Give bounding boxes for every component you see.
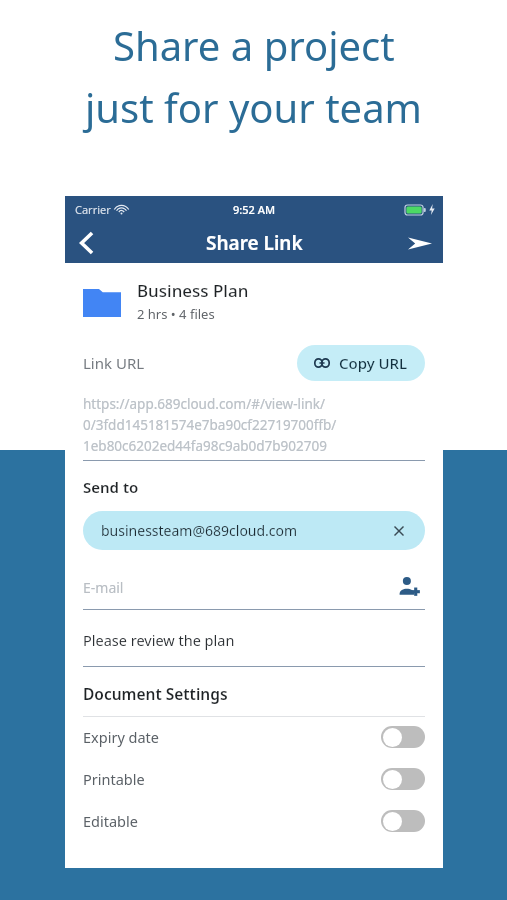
button[interactable]: Copy URL — [297, 345, 425, 381]
staticText: 9:52 AM — [233, 202, 276, 217]
staticText: Carrier — [75, 202, 111, 217]
button[interactable]: Send — [397, 223, 443, 263]
staticText: Business Plan — [137, 279, 249, 302]
button[interactable]: Editable — [83, 801, 425, 841]
button[interactable]: Add contact — [395, 572, 425, 602]
button[interactable]: Remove recipient — [391, 523, 407, 539]
button[interactable]: Printable — [83, 759, 425, 799]
staticText: Editable — [83, 811, 138, 831]
staticText: Share Link — [206, 230, 303, 256]
button[interactable]: Expiry date — [83, 717, 425, 757]
staticText: Send to — [83, 477, 139, 497]
staticText: Printable — [83, 769, 145, 789]
staticText: 1eb80c6202ed44fa98c9ab0d7b902709 — [83, 437, 327, 455]
button[interactable]: Back — [65, 223, 109, 263]
staticText: Document Settings — [83, 683, 228, 704]
staticText: E-mail — [83, 578, 124, 597]
button[interactable]: Business Plan — [83, 279, 425, 323]
button[interactable]: businessteam@689cloud.com — [83, 511, 425, 550]
staticText: Copy URL — [339, 353, 408, 373]
staticText: Link URL — [83, 353, 145, 373]
staticText: Share a project — [113, 18, 395, 72]
staticText: Expiry date — [83, 727, 160, 747]
staticText: businessteam@689cloud.com — [101, 521, 298, 540]
staticText: https://app.689cloud.com/#/view-link/ — [83, 395, 326, 413]
staticText: Please review the plan — [83, 630, 235, 650]
staticText: 2 hrs • 4 files — [137, 305, 215, 323]
staticText: 0/3fdd145181574e7ba90cf22719700ffb/ — [83, 416, 337, 434]
staticText: just for your team — [85, 80, 422, 134]
